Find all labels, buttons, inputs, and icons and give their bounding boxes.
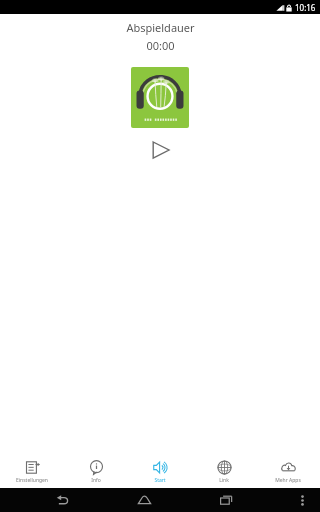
button[interactable]: Mehr Apps <box>256 456 320 488</box>
staticText: 00:00 <box>146 38 175 53</box>
staticText: Link <box>219 477 229 484</box>
staticText: Einstellungen <box>16 477 48 484</box>
button[interactable]: Back <box>42 488 82 512</box>
button[interactable]: Einstellungen <box>0 456 64 488</box>
button[interactable]: Home <box>124 488 164 512</box>
button[interactable]: Play <box>147 139 173 161</box>
button[interactable]: Start <box>128 456 192 488</box>
staticText: Abspieldauer <box>126 20 195 35</box>
staticText: 10:16 <box>295 2 316 13</box>
staticText: Mehr Apps <box>275 477 301 484</box>
button[interactable]: Info <box>64 456 128 488</box>
staticText: Info <box>91 477 101 484</box>
button[interactable]: Recent apps <box>206 488 246 512</box>
button[interactable]: Link <box>192 456 256 488</box>
button[interactable] <box>131 67 189 128</box>
staticText: Start <box>154 477 166 484</box>
button[interactable]: More options <box>288 488 316 512</box>
